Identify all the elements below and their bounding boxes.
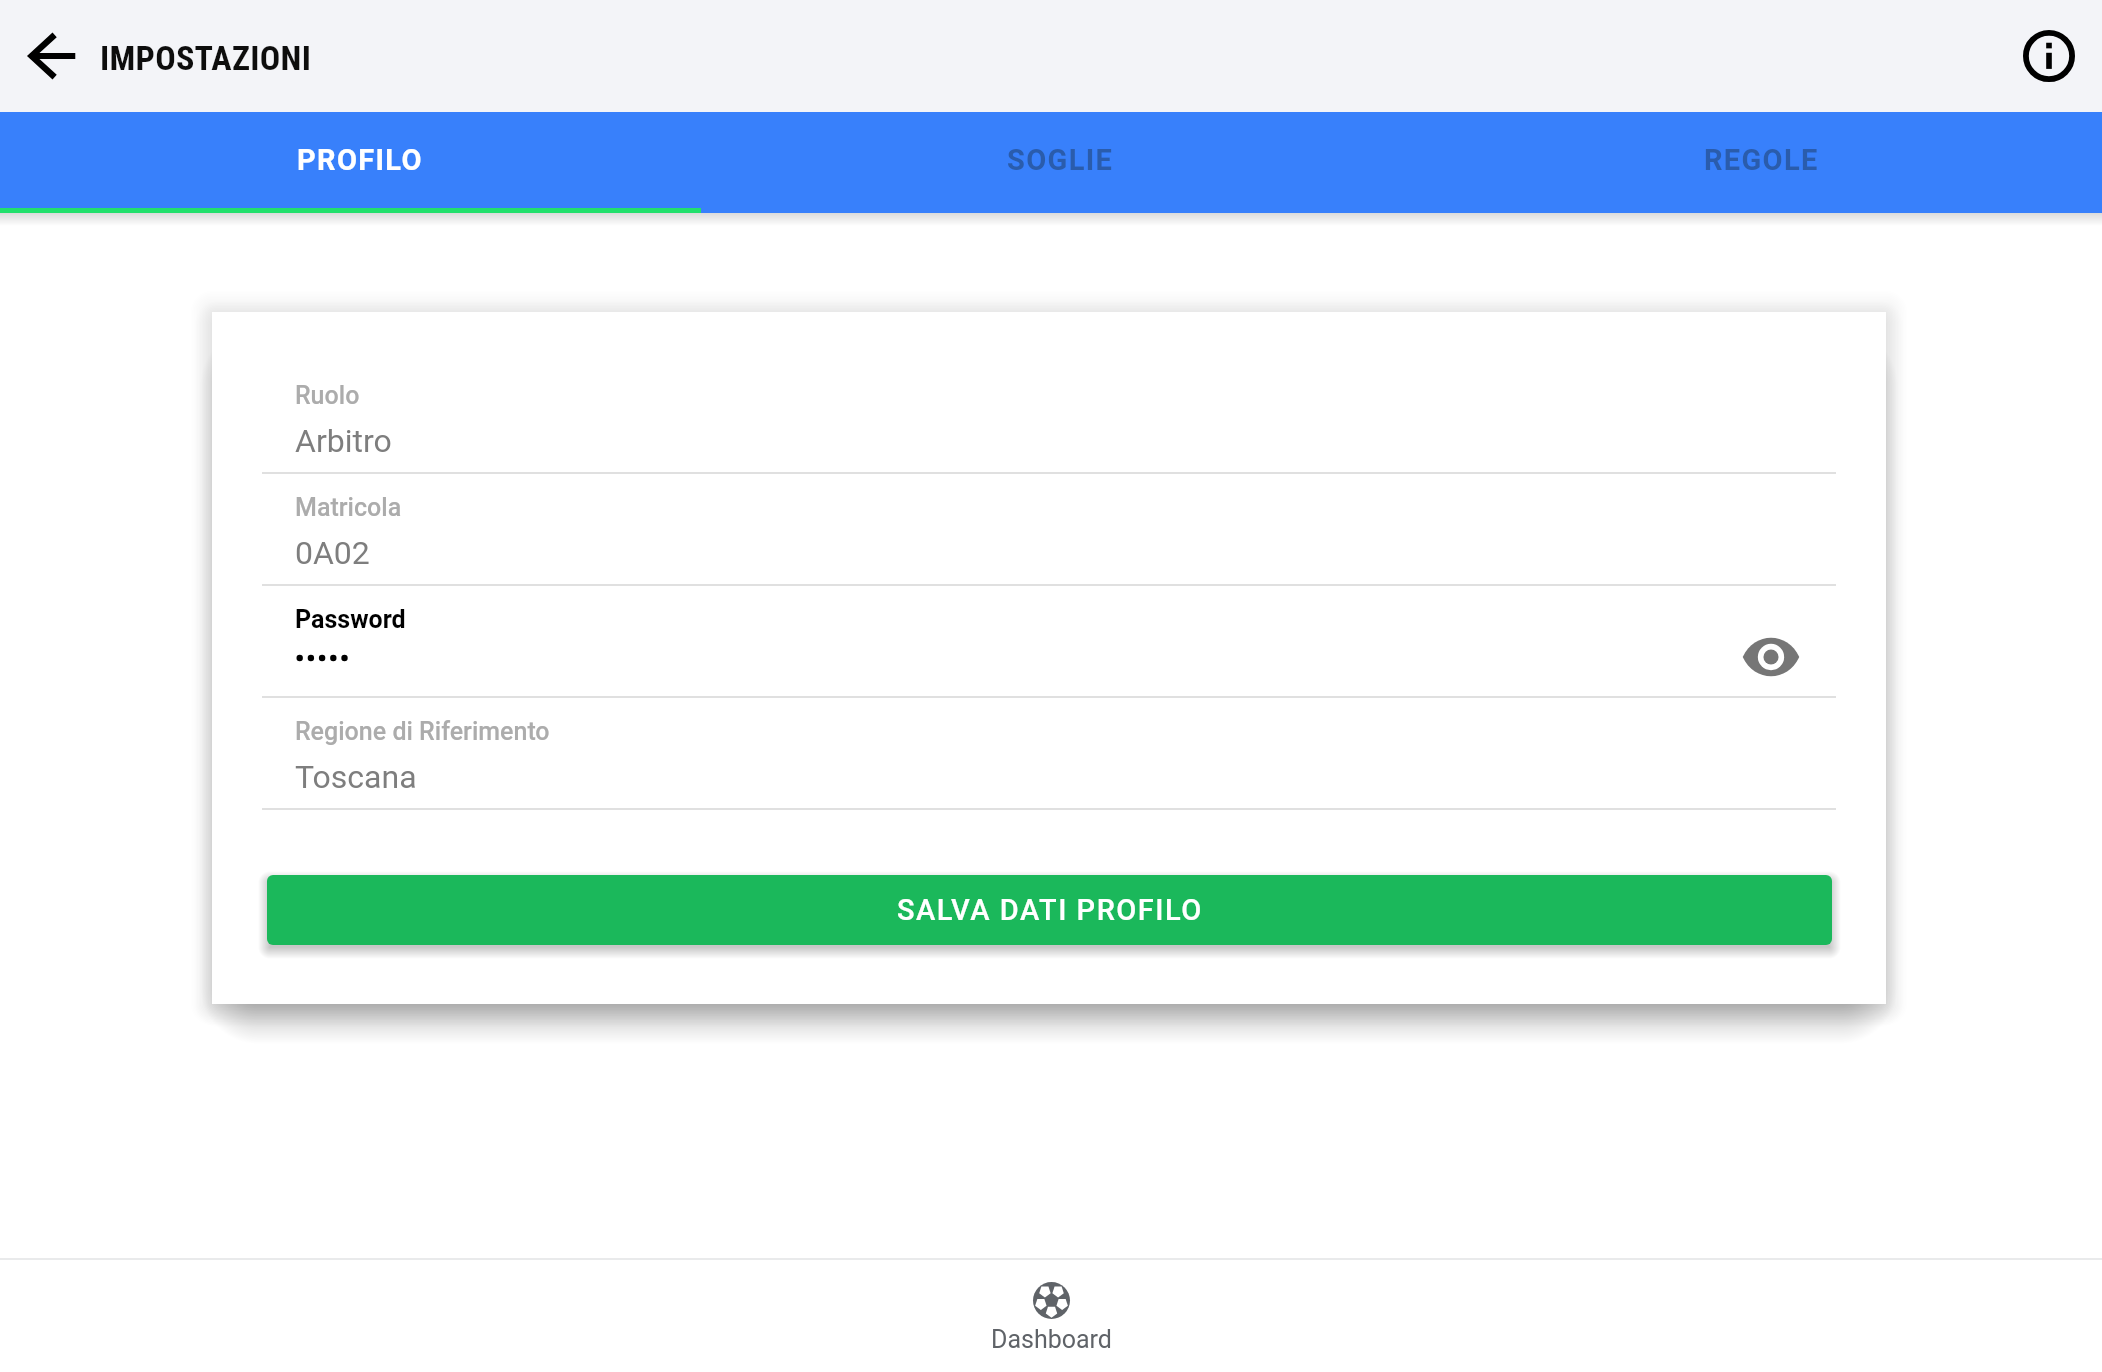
staticText: 0A02 <box>295 534 370 572</box>
button[interactable]: REGOLE <box>1401 112 2102 208</box>
button[interactable]: Show password <box>1739 625 1803 689</box>
staticText: IMPOSTAZIONI <box>100 38 312 78</box>
staticText: Arbitro <box>295 422 392 460</box>
staticText: Dashboard <box>991 1325 1112 1354</box>
staticText: PROFILO <box>297 143 423 177</box>
staticText: Password <box>295 605 406 634</box>
button[interactable]: Info <box>2013 20 2085 92</box>
staticText: Matricola <box>295 493 402 522</box>
button[interactable]: SALVA DATI PROFILO <box>267 875 1832 945</box>
staticText: SALVA DATI PROFILO <box>897 893 1203 927</box>
staticText: REGOLE <box>1704 143 1819 177</box>
button[interactable]: Back <box>16 20 88 92</box>
staticText: Regione di Riferimento <box>295 717 550 746</box>
staticText: Toscana <box>295 758 417 796</box>
staticText: SOGLIE <box>1007 143 1114 177</box>
button[interactable]: Dashboard <box>941 1260 1161 1372</box>
staticText: Ruolo <box>295 381 360 410</box>
button[interactable]: PROFILO <box>0 112 700 208</box>
button[interactable]: SOGLIE <box>700 112 1401 208</box>
